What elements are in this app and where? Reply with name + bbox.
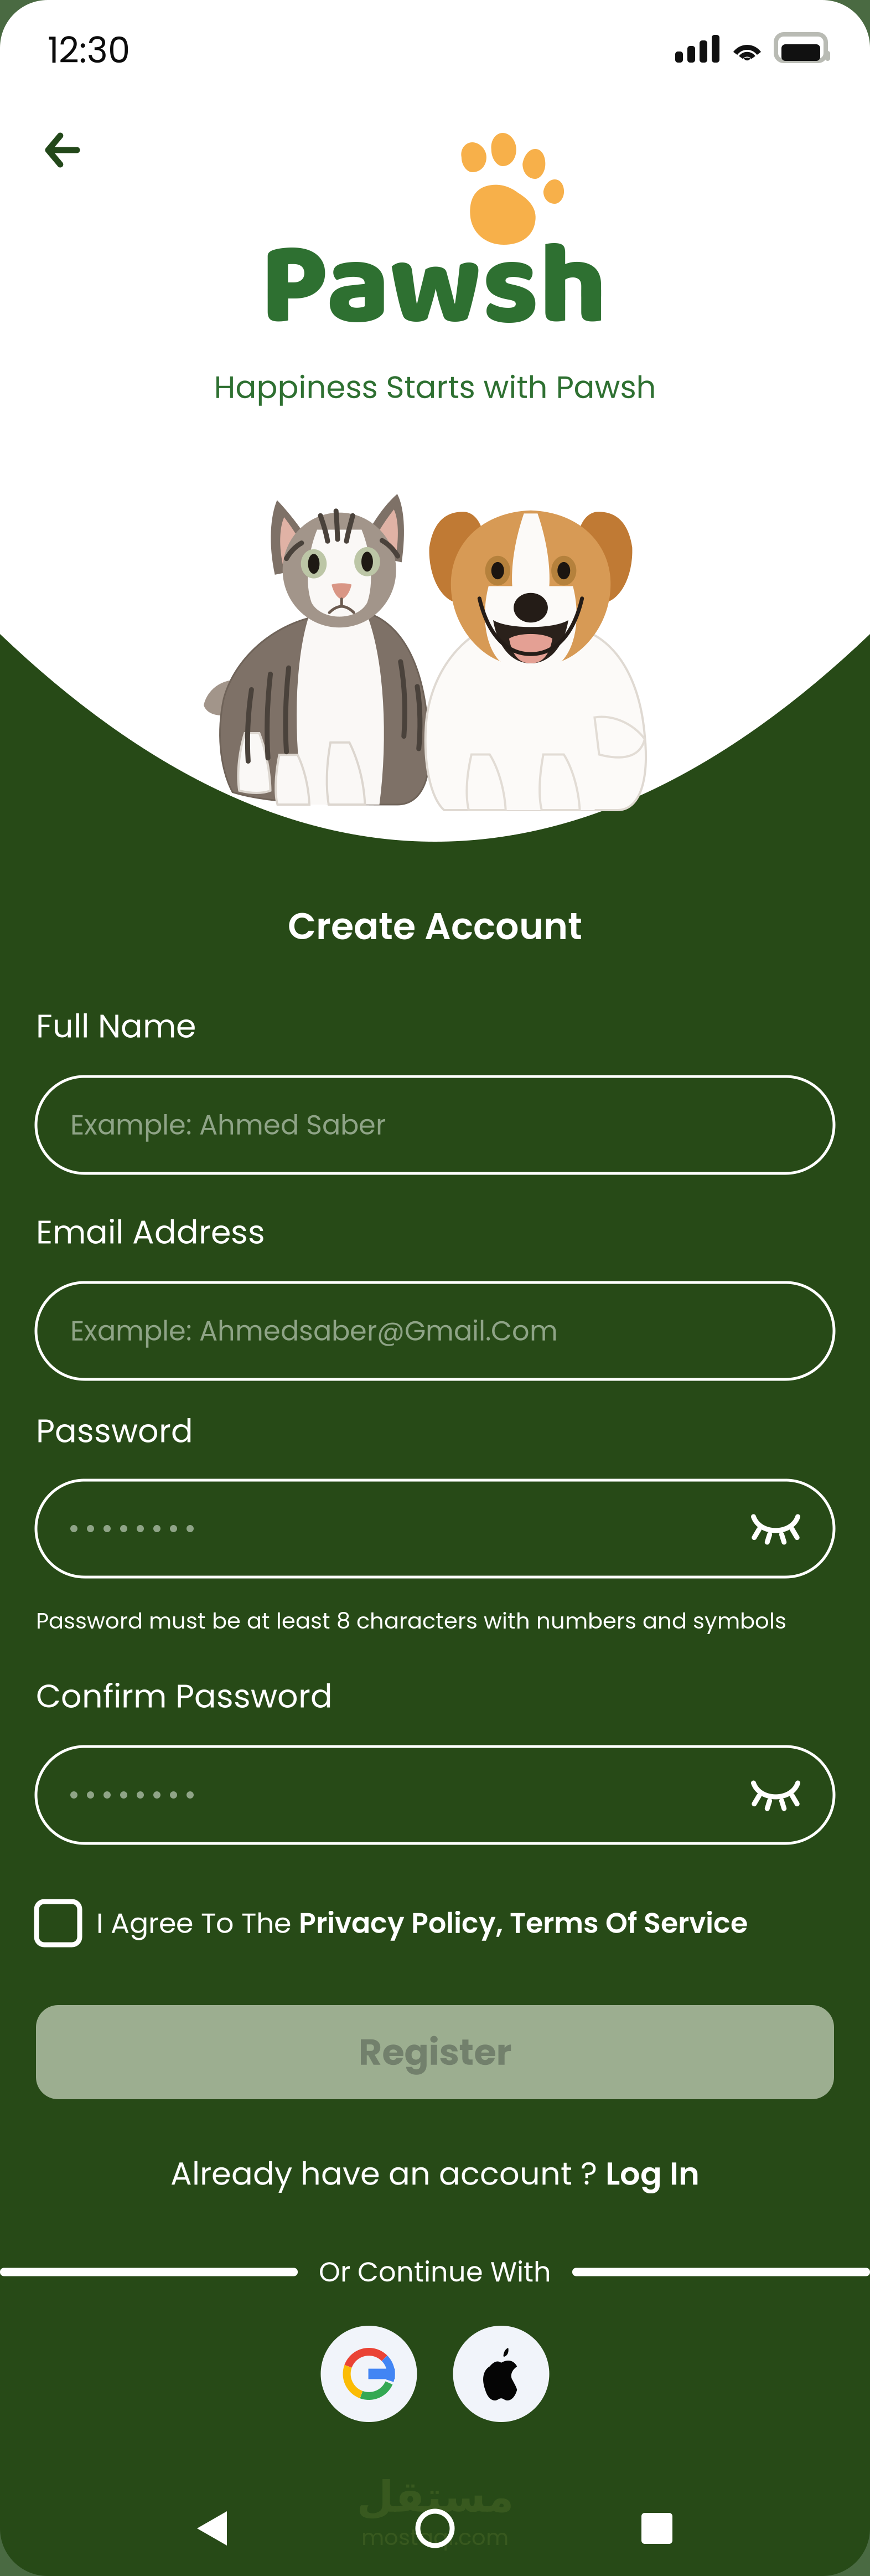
button[interactable]: Example: Ahmed Saber	[36, 1076, 834, 1173]
button[interactable]: Privacy Policy, Terms Of Service	[299, 1903, 748, 1943]
button[interactable]: Example: Ahmedsaber@Gmail.Com	[36, 1282, 834, 1379]
staticText: Pawsh	[260, 195, 607, 382]
staticText: Email Address	[36, 1209, 265, 1255]
staticText: Example: Ahmedsaber@Gmail.Com	[70, 1312, 558, 1350]
staticText: Create Account	[288, 900, 582, 952]
staticText: Password must be at least 8 characters w…	[36, 1605, 786, 1636]
staticText: Example: Ahmed Saber	[70, 1106, 386, 1144]
button[interactable]	[36, 1746, 834, 1843]
staticText: I Agree To The	[96, 1903, 299, 1943]
staticText: 12:30	[48, 25, 130, 75]
button[interactable]: Register	[36, 2005, 834, 2099]
staticText: مستقل	[356, 2472, 514, 2522]
staticText: Or Continue With	[319, 2253, 551, 2291]
staticText: Happiness Starts with Pawsh	[214, 365, 656, 409]
staticText: Register	[358, 2027, 512, 2078]
staticText: Password	[36, 1408, 193, 1454]
staticText: Log In	[605, 2151, 700, 2196]
button[interactable]	[36, 1480, 834, 1577]
staticText: Already have an account ?	[170, 2151, 605, 2196]
staticText: Confirm Password	[36, 1673, 333, 1719]
staticText: Privacy Policy, Terms Of Service	[299, 1903, 748, 1943]
button[interactable]: Back	[25, 113, 100, 187]
button[interactable]: Log In	[605, 2151, 700, 2196]
button[interactable]: Continue with Apple	[453, 2326, 549, 2422]
button[interactable]: I agree to the privacy policy	[37, 1902, 80, 1945]
staticText: mostaql.com	[361, 2522, 509, 2553]
staticText: Full Name	[36, 1003, 196, 1049]
button[interactable]: Continue with Google	[321, 2326, 417, 2422]
